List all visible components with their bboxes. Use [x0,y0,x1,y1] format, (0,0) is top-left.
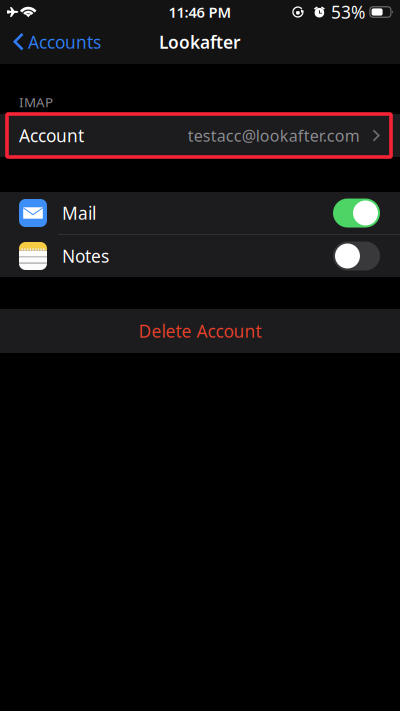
staticText: testacc@lookafter.com [188,125,360,146]
staticText: IMAP [19,93,53,111]
button[interactable]: Delete Account [0,309,400,353]
staticText: Account [19,124,84,147]
button[interactable]: Accounts [0,23,109,61]
staticText: Accounts [28,30,101,53]
staticText: Mail [62,201,96,224]
staticText: Lookafter [159,30,241,53]
staticText: Notes [62,244,109,267]
button[interactable]: Notes disabled [333,241,380,270]
staticText: 11:46 PM [168,2,231,22]
button[interactable]: Mail enabled [333,198,380,227]
staticText: Delete Account [138,319,261,342]
staticText: 53% [331,0,365,23]
button[interactable]: Account [0,114,400,157]
